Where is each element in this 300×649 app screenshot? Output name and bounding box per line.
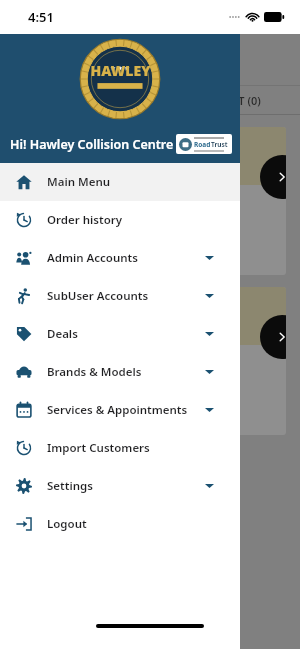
staticText: REQUEST (0) <box>196 93 261 108</box>
staticText: Trust <box>211 140 228 149</box>
button[interactable]: Logout <box>0 505 240 543</box>
button[interactable]: Deals <box>0 315 240 353</box>
staticText: SubUser Accounts <box>47 288 149 304</box>
staticText: Settings <box>47 478 93 494</box>
button[interactable]: Import Customers <box>0 429 240 467</box>
button[interactable]: Admin Accounts <box>0 239 240 277</box>
staticText: Brands & Models <box>47 364 142 380</box>
staticText: HAWLEY <box>90 61 151 80</box>
button[interactable]: Settings <box>0 467 240 505</box>
staticText: Main Menu <box>47 174 111 190</box>
button[interactable]: SubUser Accounts <box>0 277 240 315</box>
staticText: Hi! Hawley Collision Centre <box>10 136 174 153</box>
staticText: Road <box>194 140 211 149</box>
staticText: 4:51 <box>28 8 54 26</box>
staticText: Deals <box>47 326 78 342</box>
button[interactable]: Next <box>260 315 286 359</box>
button[interactable]: Order history <box>0 201 240 239</box>
button[interactable]: Main Menu <box>0 163 240 201</box>
button[interactable]: RoadTrust <box>176 134 232 154</box>
staticText: 1946 <box>115 83 126 89</box>
button[interactable]: Next <box>260 155 286 199</box>
button[interactable]: Brands & Models <box>0 353 240 391</box>
staticText: Import Customers <box>47 440 150 456</box>
button[interactable]: Services & Appointments <box>0 391 240 429</box>
staticText: Services & Appointments <box>47 402 188 418</box>
staticText: Order history <box>47 212 123 228</box>
staticText: Admin Accounts <box>47 250 138 266</box>
staticText: Logout <box>47 516 87 532</box>
